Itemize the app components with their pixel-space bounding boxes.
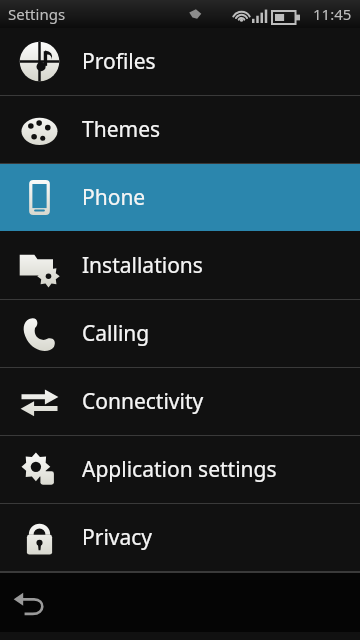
staticText: Privacy bbox=[82, 523, 153, 552]
button[interactable]: Back bbox=[6, 579, 54, 627]
staticText: Themes bbox=[82, 115, 161, 144]
button[interactable]: Calling bbox=[0, 300, 360, 367]
button[interactable]: Installations bbox=[0, 232, 360, 299]
staticText: Calling bbox=[82, 319, 150, 348]
button[interactable]: Profiles bbox=[0, 28, 360, 95]
staticText: Phone bbox=[82, 183, 146, 212]
button[interactable]: Privacy bbox=[0, 504, 360, 571]
staticText: Connectivity bbox=[82, 387, 204, 416]
button[interactable]: Connectivity bbox=[0, 368, 360, 435]
staticText: Profiles bbox=[82, 47, 156, 76]
staticText: Installations bbox=[82, 251, 203, 280]
staticText: Settings bbox=[8, 4, 66, 24]
button[interactable]: Themes bbox=[0, 96, 360, 163]
button[interactable]: Application settings bbox=[0, 436, 360, 503]
button[interactable]: Phone bbox=[0, 164, 360, 231]
staticText: Application settings bbox=[82, 455, 277, 484]
staticText: 11:45 bbox=[313, 4, 352, 24]
